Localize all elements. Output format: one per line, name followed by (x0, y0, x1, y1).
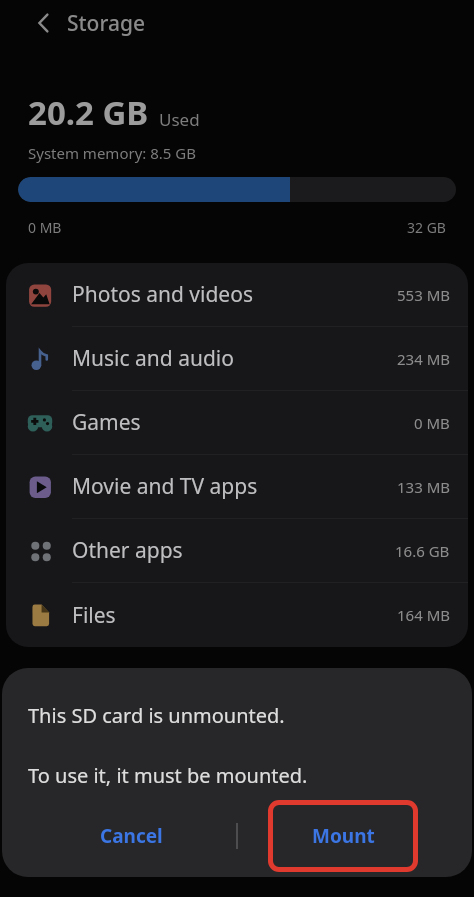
staticText: 133 MB (397, 477, 450, 497)
button[interactable]: Cancel (26, 798, 236, 874)
staticText: Mount (312, 823, 375, 849)
staticText: This SD card is unmounted. (28, 702, 285, 729)
button[interactable]: Other apps (6, 519, 468, 583)
staticText: To use it, it must be mounted. (28, 762, 308, 789)
staticText: 0 MB (414, 413, 450, 433)
button[interactable]: Music and audio (6, 327, 468, 391)
button[interactable]: Mount (268, 800, 418, 872)
staticText: 20.2 GB (28, 90, 149, 135)
staticText: Storage (67, 9, 145, 38)
staticText: Used (159, 108, 200, 131)
staticText: 164 MB (397, 605, 450, 625)
button[interactable]: Games (6, 391, 468, 455)
staticText: 234 MB (397, 349, 450, 369)
staticText: 32 GB (407, 218, 446, 237)
staticText: Cancel (100, 823, 163, 849)
button[interactable]: Files (6, 583, 468, 647)
staticText: Music and audio (72, 344, 234, 373)
staticText: 0 MB (28, 218, 62, 237)
button[interactable]: Photos and videos (6, 263, 468, 327)
staticText: Other apps (72, 536, 183, 565)
staticText: System memory: 8.5 GB (28, 143, 196, 163)
staticText: Files (72, 601, 116, 630)
button[interactable]: Movie and TV apps (6, 455, 468, 519)
staticText: 16.6 GB (395, 541, 450, 561)
button[interactable] (26, 4, 64, 42)
staticText: Photos and videos (72, 280, 253, 309)
staticText: 553 MB (397, 285, 450, 305)
staticText: Movie and TV apps (72, 472, 258, 501)
staticText: Games (72, 408, 141, 437)
